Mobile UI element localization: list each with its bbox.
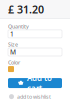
button[interactable]: add to wishlist bbox=[9, 93, 70, 100]
staticText: Color bbox=[8, 59, 20, 66]
staticText: Quantity bbox=[8, 23, 29, 30]
staticText: M bbox=[10, 48, 16, 56]
staticText: Add to cart bbox=[27, 72, 52, 94]
button[interactable] bbox=[8, 66, 14, 72]
staticText: Size bbox=[8, 41, 18, 48]
button[interactable]: Add to cart bbox=[8, 78, 62, 88]
staticText: £ 31.20 bbox=[8, 2, 44, 16]
staticText: 1 bbox=[10, 29, 14, 38]
staticText: add to wishlist bbox=[17, 93, 51, 100]
